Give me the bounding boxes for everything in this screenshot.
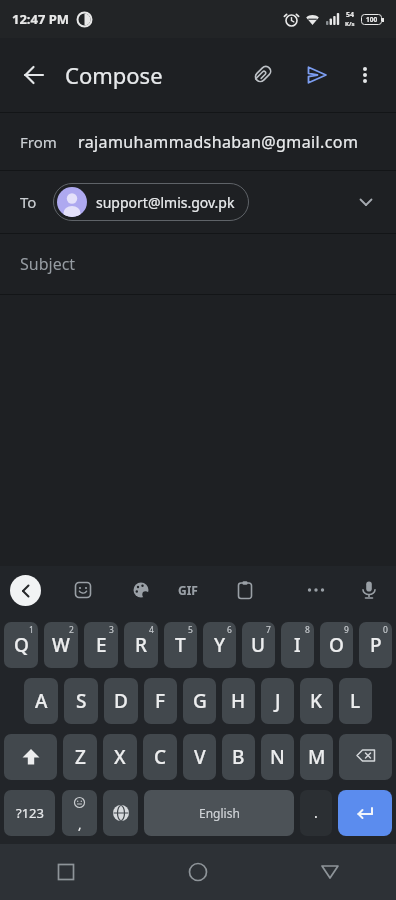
button[interactable]: H (222, 678, 255, 724)
button[interactable] (298, 56, 336, 94)
button[interactable] (103, 790, 138, 836)
button[interactable] (132, 844, 264, 900)
staticText: C (154, 744, 167, 770)
button[interactable]: J (261, 678, 294, 724)
staticText: , (78, 815, 82, 833)
staticText: E (96, 632, 107, 658)
staticText: ?123 (16, 804, 44, 822)
button[interactable]: . (300, 790, 332, 836)
button[interactable]: From (0, 113, 396, 170)
staticText: L (350, 688, 361, 714)
button[interactable]: , (62, 790, 97, 836)
staticText: . (314, 803, 318, 822)
button[interactable] (348, 184, 384, 220)
button[interactable]: D (104, 678, 138, 724)
staticText: K (310, 688, 323, 714)
button[interactable] (235, 580, 255, 600)
button[interactable] (264, 844, 396, 900)
button[interactable] (131, 580, 151, 600)
staticText: T (175, 632, 186, 658)
button[interactable]: M (300, 734, 333, 780)
staticText: English (199, 805, 240, 821)
button[interactable]: GIF (178, 582, 198, 598)
staticText: GIF (178, 582, 198, 598)
button[interactable]: A (24, 678, 58, 724)
staticText: 0 (383, 624, 388, 636)
staticText: D (114, 688, 128, 714)
staticText: O (329, 632, 344, 658)
staticText: W (52, 632, 70, 658)
staticText: 3 (109, 624, 114, 636)
staticText: support@lmis.gov.pk (96, 193, 235, 212)
button[interactable] (338, 790, 392, 836)
staticText: 6 (227, 624, 232, 636)
staticText: A (35, 688, 48, 714)
button[interactable]: ?123 (4, 790, 55, 836)
button[interactable] (73, 580, 93, 600)
button[interactable] (359, 580, 379, 600)
button[interactable]: E (84, 622, 118, 668)
button[interactable] (306, 580, 326, 600)
button[interactable]: English (144, 790, 294, 836)
staticText: 12:47 PM (12, 10, 70, 28)
staticText: X (114, 744, 126, 770)
staticText: S (76, 688, 87, 714)
button[interactable]: K (300, 678, 333, 724)
button[interactable] (4, 734, 57, 780)
button[interactable] (339, 734, 392, 780)
staticText: H (231, 688, 246, 714)
button[interactable]: Z (63, 734, 97, 780)
staticText: J (275, 688, 281, 714)
button[interactable]: S (64, 678, 98, 724)
staticText: rajamuhammadshaban@gmail.com (78, 131, 359, 153)
staticText: N (270, 744, 285, 770)
button[interactable]: Q (4, 622, 38, 668)
staticText: 54 (346, 10, 355, 20)
button[interactable]: I (281, 622, 314, 668)
button[interactable]: O (320, 622, 353, 668)
staticText: To (20, 192, 37, 212)
button[interactable] (14, 55, 54, 95)
button[interactable] (348, 58, 382, 92)
button[interactable]: B (222, 734, 255, 780)
staticText: 7 (266, 624, 271, 636)
button[interactable]: C (143, 734, 177, 780)
button[interactable]: support@lmis.gov.pk (53, 183, 249, 221)
staticText: Subject (20, 253, 76, 275)
staticText: U (251, 632, 266, 658)
staticText: 100 (366, 15, 378, 24)
button[interactable]: R (124, 622, 158, 668)
button[interactable] (0, 844, 132, 900)
button[interactable]: T (164, 622, 197, 668)
button[interactable]: U (242, 622, 275, 668)
button[interactable] (244, 57, 280, 93)
staticText: Compose (65, 60, 163, 90)
staticText: B (232, 744, 245, 770)
button[interactable]: X (103, 734, 137, 780)
button[interactable]: F (144, 678, 177, 724)
staticText: G (193, 688, 207, 714)
staticText: I (294, 632, 301, 658)
button[interactable]: G (183, 678, 216, 724)
staticText: Y (214, 632, 226, 658)
button[interactable]: W (44, 622, 78, 668)
button[interactable]: P (359, 622, 392, 668)
staticText: 2 (69, 624, 74, 636)
button[interactable]: Y (203, 622, 236, 668)
button[interactable]: V (183, 734, 216, 780)
staticText: 8 (305, 624, 310, 636)
button[interactable]: L (339, 678, 372, 724)
button[interactable]: N (261, 734, 294, 780)
staticText: F (155, 688, 166, 714)
staticText: 1 (29, 624, 34, 636)
button[interactable]: Subject (0, 234, 396, 294)
staticText: Q (14, 632, 29, 658)
staticText: Z (75, 744, 86, 770)
staticText: V (194, 744, 206, 770)
staticText: From (20, 132, 57, 152)
staticText: P (370, 632, 382, 658)
staticText: 9 (344, 624, 349, 636)
staticText: R (135, 632, 148, 658)
staticText: 5 (188, 624, 193, 636)
button[interactable] (10, 575, 41, 606)
